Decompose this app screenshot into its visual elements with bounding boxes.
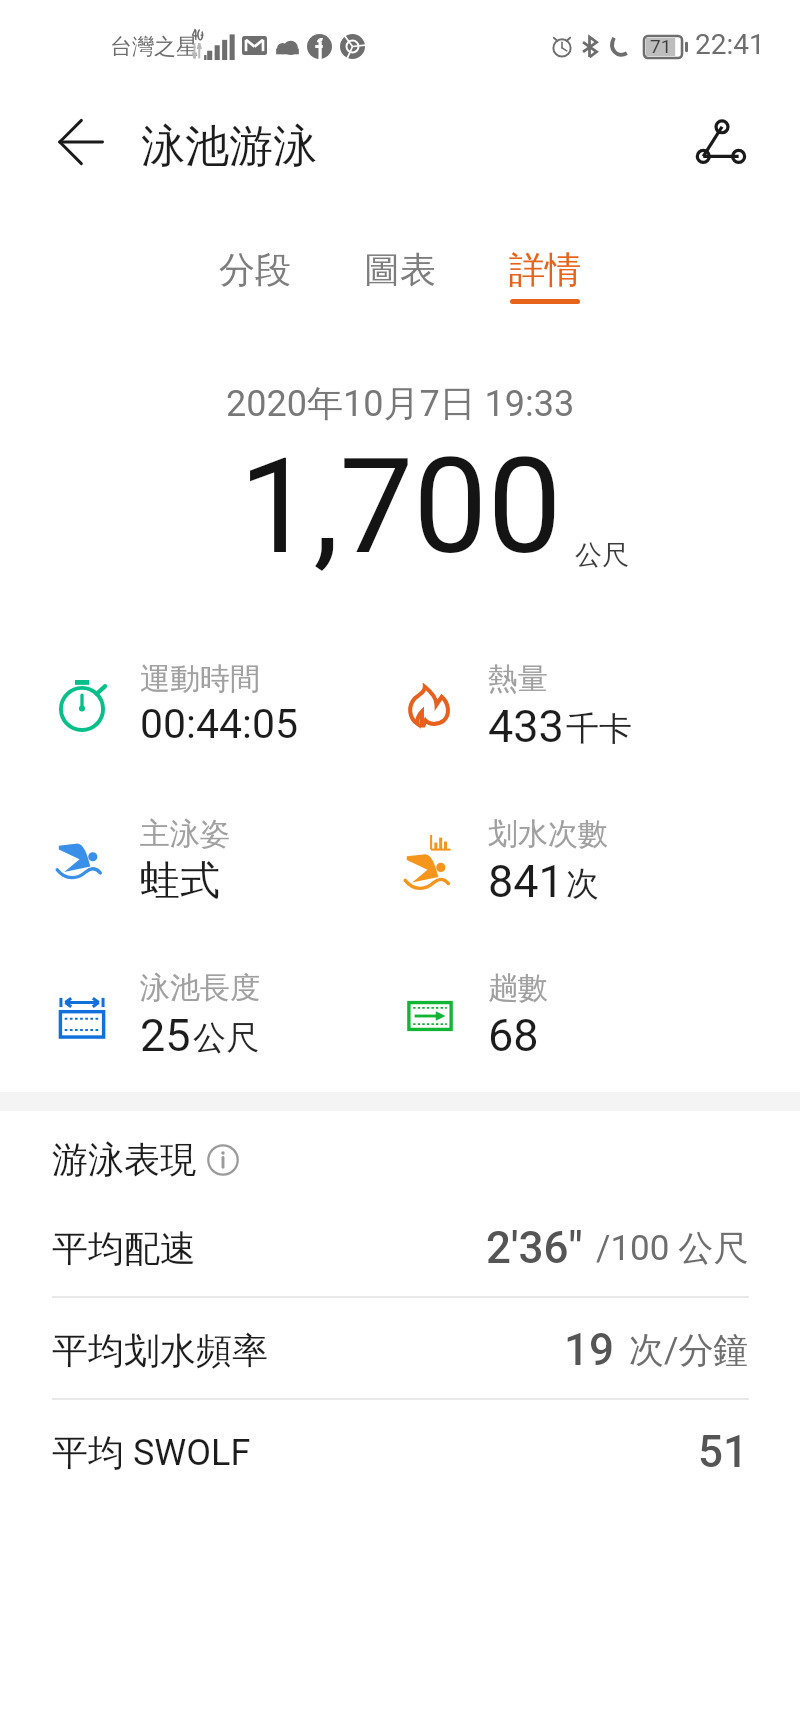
staticText: 68	[488, 1009, 539, 1062]
button[interactable]: 運動時間	[50, 660, 299, 748]
staticText: 平均划水頻率	[52, 1328, 268, 1373]
button[interactable]: 分段	[197, 247, 313, 327]
button[interactable]: 趟數	[398, 969, 548, 1062]
staticText: 平均 SWOLF	[52, 1430, 251, 1475]
staticText: 泳池長度	[140, 969, 260, 1007]
button[interactable]: 詳情	[487, 247, 603, 327]
staticText: 台灣之星	[110, 33, 198, 61]
staticText: 841	[488, 855, 564, 908]
staticText: 分段	[219, 247, 291, 292]
staticText: 蛙式	[140, 855, 220, 905]
button[interactable]: 熱量	[398, 660, 632, 753]
button[interactable]: 泳池長度	[50, 969, 260, 1062]
staticText: 游泳表現	[52, 1137, 196, 1182]
staticText: 趟數	[488, 969, 548, 1007]
staticText: 詳情	[509, 247, 581, 292]
staticText: 主泳姿	[140, 815, 230, 853]
staticText: 圖表	[364, 247, 436, 292]
staticText: 25	[140, 1009, 191, 1062]
staticText: 次/分鐘	[629, 1328, 749, 1372]
staticText: 次	[566, 863, 599, 905]
staticText: 公尺	[193, 1017, 259, 1059]
staticText: 平均配速	[52, 1226, 196, 1271]
staticText: 2020年10月7日 19:33	[226, 381, 575, 426]
staticText: 19	[564, 1324, 615, 1376]
button[interactable]: Share	[688, 112, 756, 180]
staticText: 千卡	[566, 708, 632, 750]
button[interactable]: 平均 SWOLF	[0, 1401, 800, 1503]
button[interactable]: 平均配速	[0, 1197, 800, 1299]
staticText: 划水次數	[488, 815, 608, 853]
staticText: 運動時間	[140, 660, 260, 698]
button[interactable]: Back	[46, 108, 114, 176]
staticText: 公尺	[575, 538, 629, 572]
staticText: 51	[698, 1426, 749, 1478]
button[interactable]: 主泳姿	[50, 815, 230, 905]
button[interactable]: Info	[204, 1141, 242, 1179]
staticText: 1,700	[239, 430, 562, 585]
staticText: 熱量	[488, 660, 548, 698]
staticText: 22:41	[695, 28, 765, 61]
button[interactable]: 平均划水頻率	[0, 1299, 800, 1401]
button[interactable]: 圖表	[342, 247, 458, 327]
staticText: 00:44:05	[140, 700, 299, 748]
staticText: /100 公尺	[596, 1226, 749, 1270]
staticText: 433	[488, 700, 564, 753]
staticText: 71	[650, 35, 672, 57]
button[interactable]: 划水次數	[398, 815, 608, 908]
staticText: 2'36"	[486, 1222, 583, 1274]
staticText: 泳池游泳	[141, 119, 317, 174]
